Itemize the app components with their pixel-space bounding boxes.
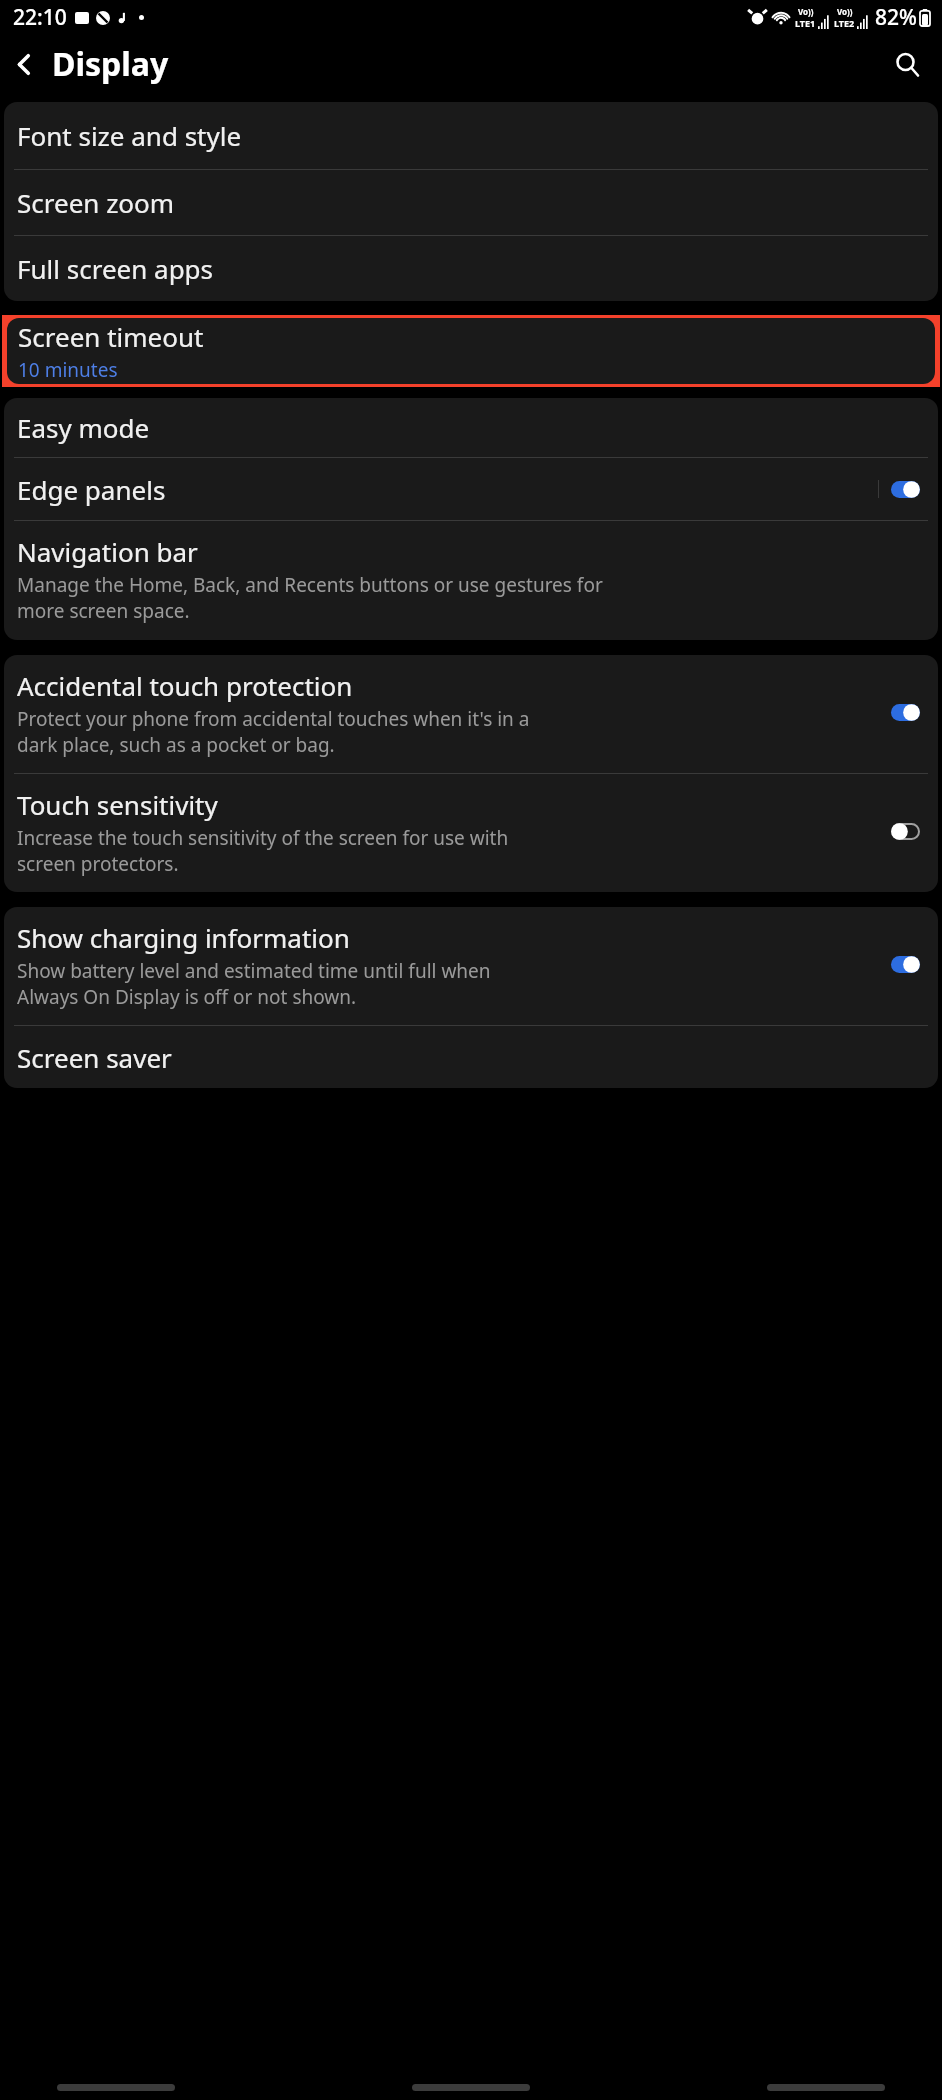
staticText: Touch sensitivity bbox=[17, 787, 218, 822]
button[interactable]: Back bbox=[0, 40, 48, 88]
staticText: Manage the Home, Back, and Recents butto… bbox=[17, 572, 603, 623]
staticText: Screen zoom bbox=[17, 185, 175, 220]
button[interactable]: Screen saver bbox=[4, 1026, 938, 1088]
button[interactable]: Font size and style bbox=[4, 102, 938, 169]
staticText: Display bbox=[52, 42, 169, 86]
staticText: Show battery level and estimated time un… bbox=[17, 958, 491, 1009]
button[interactable]: Screen timeout bbox=[7, 318, 935, 384]
staticText: Show charging information bbox=[17, 920, 350, 955]
staticText: LTE2 bbox=[834, 17, 855, 29]
staticText: 10 minutes bbox=[18, 357, 118, 383]
button[interactable]: Full screen apps bbox=[4, 236, 938, 301]
button[interactable]: Touch sensitivity bbox=[4, 774, 938, 892]
staticText: LTE1 bbox=[795, 17, 816, 29]
staticText: Accidental touch protection bbox=[17, 668, 353, 703]
staticText: Easy mode bbox=[17, 410, 150, 445]
staticText: Font size and style bbox=[17, 118, 242, 153]
button[interactable]: Show charging information bbox=[4, 907, 938, 1025]
button[interactable]: Switch off bbox=[891, 823, 920, 840]
button[interactable]: Switch on bbox=[891, 956, 920, 973]
button[interactable]: Search bbox=[884, 41, 930, 87]
staticText: Vo)) bbox=[837, 6, 853, 17]
button[interactable]: Switch on bbox=[891, 481, 920, 498]
button[interactable]: Switch on bbox=[891, 704, 920, 721]
staticText: Navigation bar bbox=[17, 534, 198, 569]
button[interactable]: Edge panels bbox=[4, 458, 938, 520]
staticText: 22:10 bbox=[13, 3, 67, 32]
button[interactable]: Easy mode bbox=[4, 398, 938, 457]
staticText: Increase the touch sensitivity of the sc… bbox=[17, 825, 509, 876]
staticText: Edge panels bbox=[17, 472, 878, 507]
button[interactable]: Accidental touch protection bbox=[4, 655, 938, 773]
staticText: 82% bbox=[875, 3, 917, 32]
button[interactable]: Navigation bar bbox=[4, 521, 938, 640]
staticText: Vo)) bbox=[798, 6, 814, 17]
staticText: Protect your phone from accidental touch… bbox=[17, 706, 530, 757]
button[interactable]: Screen zoom bbox=[4, 170, 938, 235]
staticText: Full screen apps bbox=[17, 251, 214, 286]
staticText: Screen timeout bbox=[18, 319, 204, 354]
staticText: Screen saver bbox=[17, 1040, 172, 1075]
